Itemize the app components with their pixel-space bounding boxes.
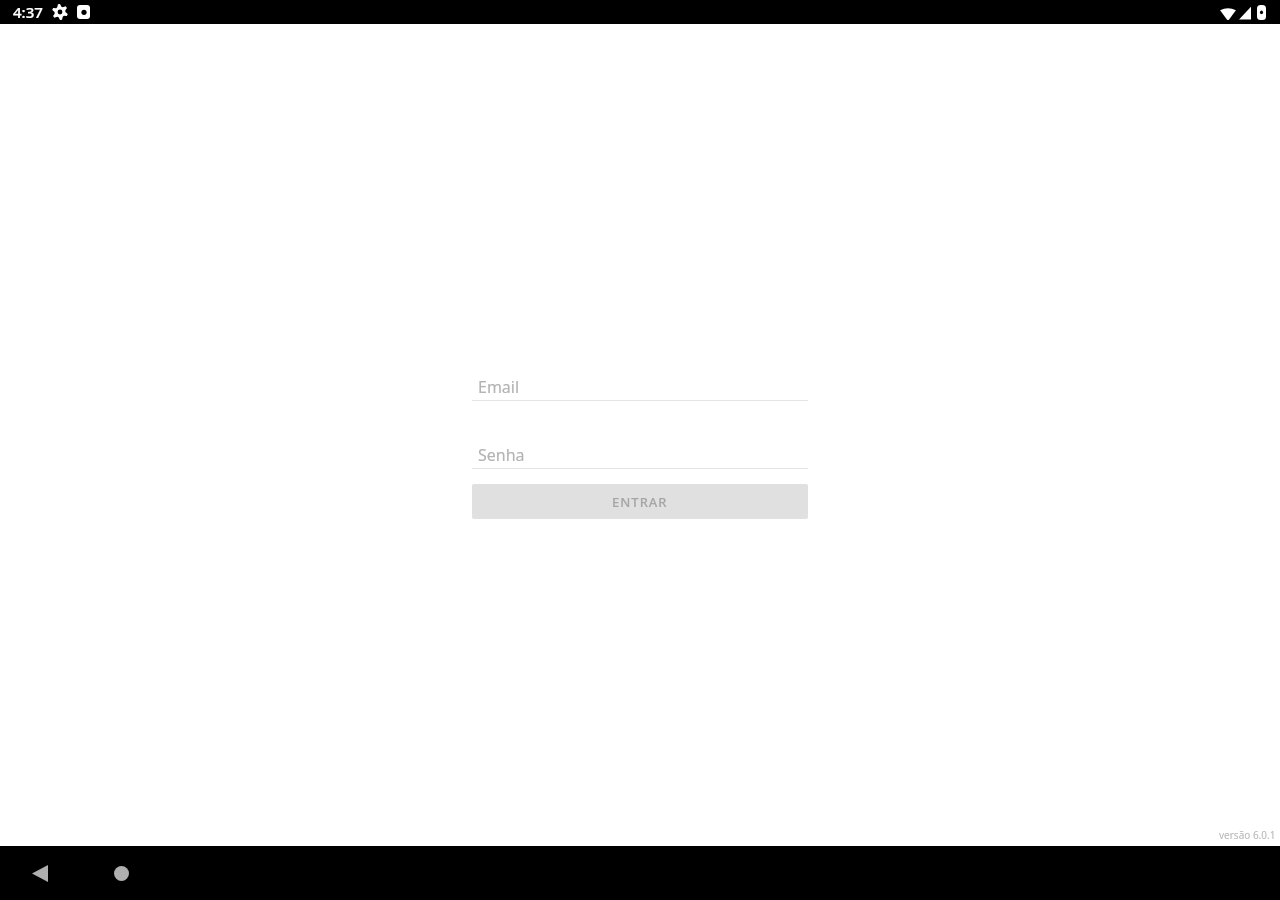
button[interactable]: Home <box>101 851 141 895</box>
other: Settings <box>52 4 68 20</box>
staticText: Email <box>478 376 520 398</box>
button[interactable]: ENTRAR <box>472 484 808 519</box>
staticText: versão 6.0.1 <box>1219 828 1276 842</box>
staticText: ENTRAR <box>612 493 668 511</box>
button[interactable]: Senha <box>472 438 808 469</box>
button[interactable]: Email <box>472 370 808 401</box>
staticText: 4:37 <box>13 2 43 22</box>
staticText: Senha <box>478 444 525 466</box>
other: Notification <box>77 5 90 19</box>
button[interactable]: Back <box>20 851 60 895</box>
